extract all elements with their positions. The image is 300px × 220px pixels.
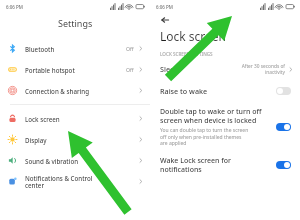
staticText: Wake Lock screen for notifications <box>160 156 276 174</box>
button[interactable]: Bluetooth <box>0 38 150 59</box>
button[interactable]: Raise to wake <box>150 80 300 102</box>
staticText: Raise to wake <box>160 86 208 96</box>
staticText: Notifications & Control center <box>25 174 139 190</box>
button[interactable]: Toggle on <box>276 123 291 131</box>
button[interactable]: Display <box>0 129 150 150</box>
button[interactable]: Back <box>159 14 171 26</box>
staticText: Connection & sharing <box>25 87 139 95</box>
staticText: Settings <box>58 17 93 29</box>
staticText: Off <box>126 66 134 73</box>
button[interactable]: Double tap to wake or turn off screen wh… <box>150 107 300 146</box>
staticText: Sleep <box>160 64 179 74</box>
staticText: 6:06 PM <box>156 4 173 10</box>
staticText: Double tap to wake or turn off screen wh… <box>160 107 262 125</box>
button[interactable]: Toggle off <box>276 87 291 95</box>
button[interactable]: Connection & sharing <box>0 80 150 101</box>
staticText: Lock screen <box>25 115 139 123</box>
staticText: You can double tap to turn the screen of… <box>160 127 249 146</box>
staticText: Lock screen <box>160 28 227 44</box>
button[interactable]: Sleep <box>150 58 300 80</box>
staticText: After 30 seconds of inactivity <box>241 63 285 75</box>
button[interactable]: Wake Lock screen for notifications <box>150 156 300 174</box>
staticText: Off <box>126 45 134 52</box>
staticText: Portable hotspot <box>25 66 126 74</box>
staticText: Display <box>25 136 139 144</box>
staticText: Sound & vibration <box>25 157 139 165</box>
button[interactable]: Notifications & Control center <box>0 171 150 192</box>
button[interactable]: Lock screen <box>0 108 150 129</box>
staticText: LOCK SCREEN SETTINGS <box>160 51 213 57</box>
button[interactable]: Sound & vibration <box>0 150 150 171</box>
staticText: 6:06 PM <box>6 4 23 10</box>
button[interactable]: Toggle on <box>276 161 291 169</box>
button[interactable]: Portable hotspot <box>0 59 150 80</box>
staticText: Bluetooth <box>25 45 126 53</box>
